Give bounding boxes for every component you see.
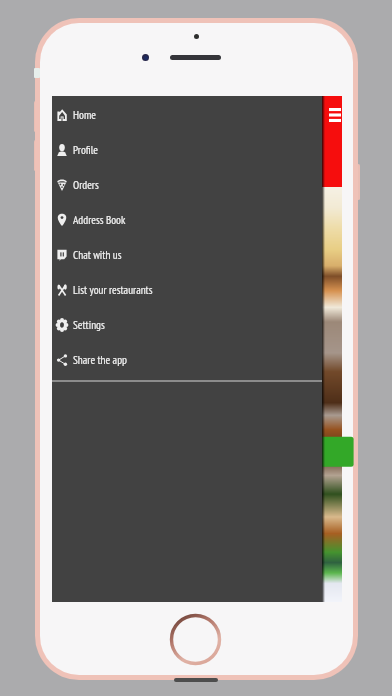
button[interactable]: Settings xyxy=(52,307,322,342)
staticText: Orders xyxy=(73,177,99,192)
staticText: Home xyxy=(73,107,96,122)
staticText: Chat with us xyxy=(73,247,122,262)
button[interactable]: Address Book xyxy=(52,202,322,237)
staticText: Share the app xyxy=(73,352,127,367)
button[interactable]: Share the app xyxy=(52,342,322,377)
staticText: Settings xyxy=(73,317,105,332)
button[interactable]: Chat with us xyxy=(52,237,322,272)
button[interactable]: Open navigation menu xyxy=(325,105,345,125)
button[interactable]: Profile xyxy=(52,132,322,167)
staticText: List your restaurants xyxy=(73,282,153,297)
button[interactable]: Home xyxy=(52,97,322,132)
button[interactable]: Orders xyxy=(52,167,322,202)
staticText: Address Book xyxy=(73,212,126,227)
staticText: Profile xyxy=(73,142,99,157)
button[interactable]: List your restaurants xyxy=(52,272,322,307)
